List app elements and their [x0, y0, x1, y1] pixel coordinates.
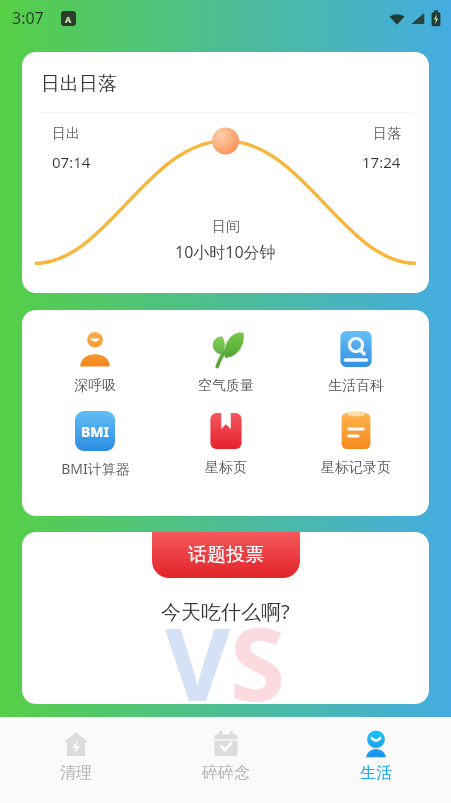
button[interactable]: 话题投票 [152, 532, 300, 578]
staticText: BMI [81, 422, 109, 441]
button[interactable]: 碎碎念 [151, 717, 301, 783]
staticText: 07:14 [52, 152, 91, 172]
staticText: V [165, 594, 230, 704]
staticText: 话题投票 [188, 543, 264, 567]
staticText: 10小时10分钟 [175, 241, 276, 263]
staticText: 日落 [373, 125, 401, 143]
button[interactable]: BMI [38, 410, 152, 479]
staticText: 日间 [212, 218, 240, 236]
button[interactable]: 生活 [301, 717, 451, 783]
button[interactable]: 清理 [0, 717, 151, 783]
staticText: 17:24 [362, 152, 401, 172]
staticText: 今天吃什么啊? [161, 598, 290, 625]
staticText: 清理 [60, 763, 92, 783]
button[interactable]: 星标记录页 [299, 410, 413, 478]
staticText: 日出日落 [41, 72, 117, 96]
button[interactable]: 生活百科 [299, 328, 413, 396]
staticText: 深呼吸 [74, 377, 116, 395]
staticText: BMI计算器 [61, 459, 130, 478]
staticText: 日出 [52, 125, 80, 143]
staticText: A [65, 13, 72, 25]
staticText: 碎碎念 [202, 763, 250, 783]
staticText: 星标页 [205, 459, 247, 477]
staticText: 生活 [360, 763, 392, 783]
staticText: 生活百科 [328, 377, 384, 395]
button[interactable]: 空气质量 [169, 328, 283, 396]
button[interactable]: V [22, 532, 429, 704]
button[interactable]: 深呼吸 [38, 328, 152, 396]
button[interactable]: 日出日落 [22, 52, 429, 293]
staticText: 3:07 [12, 7, 44, 29]
staticText: 空气质量 [198, 377, 254, 395]
button[interactable]: 星标页 [169, 410, 283, 478]
staticText: 星标记录页 [321, 459, 391, 477]
staticText: S [230, 594, 286, 704]
